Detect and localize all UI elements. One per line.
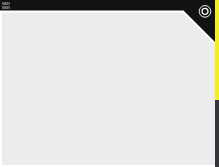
staticText: NEWS (2, 6, 10, 10)
button[interactable]: Site logo (2, 2, 10, 10)
staticText: MAIN (2, 2, 10, 6)
button[interactable]: Record (197, 4, 212, 19)
